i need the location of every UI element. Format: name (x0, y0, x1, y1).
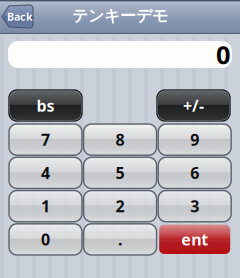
button[interactable]: 0 (9, 224, 82, 255)
staticText: テンキーデモ (72, 6, 168, 26)
staticText: 5 (116, 162, 125, 183)
button[interactable]: 1 (9, 190, 82, 222)
staticText: . (118, 229, 122, 250)
staticText: 9 (190, 129, 199, 150)
button[interactable]: 4 (9, 157, 82, 188)
staticText: 1 (41, 195, 50, 217)
staticText: 8 (116, 129, 125, 150)
button[interactable]: 3 (158, 190, 231, 222)
button[interactable]: 2 (84, 190, 157, 222)
staticText: bs (36, 95, 54, 116)
staticText: Back (7, 9, 33, 24)
staticText: +/- (183, 95, 204, 116)
button[interactable]: ent (158, 224, 231, 255)
button[interactable]: . (84, 224, 157, 255)
staticText: 4 (41, 162, 50, 183)
staticText: 0 (41, 229, 50, 250)
staticText: 2 (116, 195, 125, 217)
staticText: 3 (190, 195, 199, 217)
button[interactable]: 6 (158, 157, 231, 188)
staticText: 6 (190, 162, 199, 183)
staticText: 7 (41, 129, 50, 150)
button[interactable]: 7 (9, 124, 82, 155)
button[interactable]: 5 (84, 157, 157, 188)
button[interactable]: Back (2, 5, 33, 28)
staticText: 0 (216, 38, 230, 71)
button[interactable]: 8 (84, 124, 157, 155)
button[interactable]: bs (9, 90, 82, 121)
button[interactable]: 9 (158, 124, 231, 155)
staticText: ent (181, 229, 208, 250)
button[interactable]: +/- (157, 90, 230, 121)
